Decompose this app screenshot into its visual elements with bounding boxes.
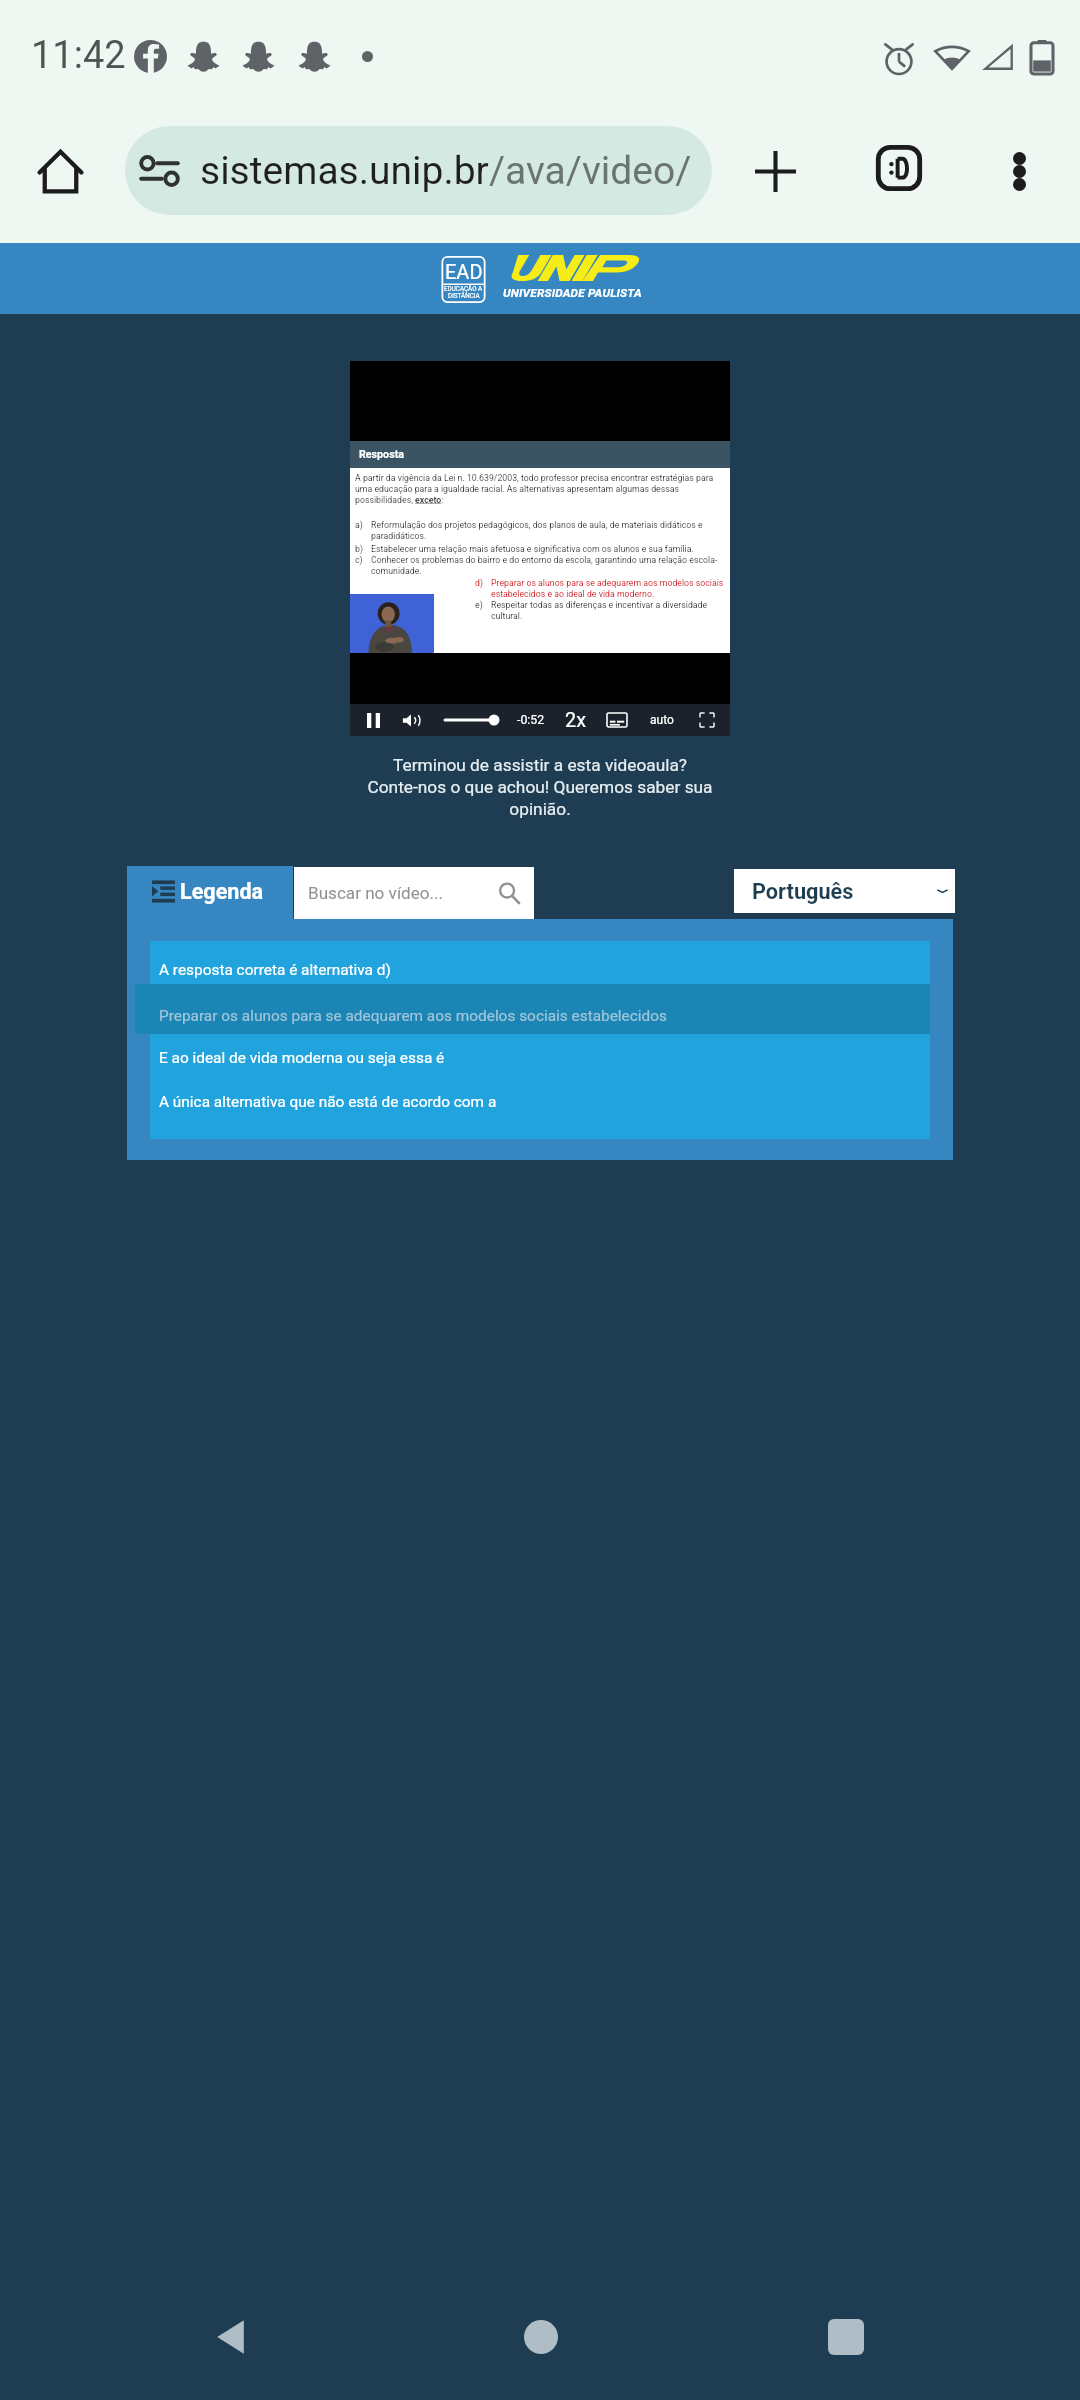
button[interactable]: Captions bbox=[602, 704, 632, 736]
staticText: sistemas.unip.br bbox=[200, 148, 489, 194]
button[interactable]: Legenda bbox=[127, 866, 293, 919]
staticText: c) bbox=[355, 555, 371, 565]
staticText: Preparar os alunos para se adequarem aos… bbox=[159, 1007, 667, 1025]
staticText: Reformulação dos projetos pedagógicos, d… bbox=[371, 520, 703, 541]
button[interactable]: Português bbox=[734, 869, 955, 913]
staticText: DISTÂNCIA bbox=[448, 292, 480, 299]
staticText: Resposta bbox=[359, 448, 404, 461]
button[interactable]: Mute bbox=[397, 704, 425, 736]
button[interactable]: A resposta correta é alternativa d) bbox=[150, 941, 930, 985]
button[interactable] bbox=[135, 984, 930, 1034]
staticText: A resposta correta é alternativa d) bbox=[159, 961, 391, 979]
button[interactable]: E ao ideal de vida moderna ou seja essa … bbox=[150, 1029, 930, 1073]
staticText: A única alternativa que não está de acor… bbox=[159, 1093, 497, 1111]
button[interactable]: Home bbox=[481, 2280, 601, 2400]
staticText: auto bbox=[650, 713, 674, 727]
staticText: /ava/video/ bbox=[489, 148, 692, 194]
button[interactable]: Recents bbox=[786, 2280, 906, 2400]
button[interactable]: Buscar no vídeo... bbox=[294, 867, 534, 919]
staticText: e) bbox=[475, 600, 491, 610]
button[interactable] bbox=[150, 985, 930, 1029]
staticText: EDUCAÇÃO A bbox=[444, 285, 483, 292]
staticText: Estabelecer uma relação mais afetuosa e … bbox=[371, 544, 694, 554]
staticText: Português bbox=[752, 879, 854, 904]
button[interactable]: Fullscreen bbox=[693, 704, 721, 736]
staticText: EAD bbox=[445, 260, 483, 283]
button[interactable]: Tab switcher bbox=[853, 122, 945, 214]
staticText: b) bbox=[355, 544, 371, 554]
button[interactable]: A única alternativa que não está de acor… bbox=[150, 1073, 930, 1117]
button[interactable]: New tab bbox=[729, 125, 821, 217]
staticText: Preparar os alunos para se adequarem aos… bbox=[491, 578, 723, 599]
button[interactable]: Home bbox=[14, 125, 106, 217]
staticText: -0:52 bbox=[517, 713, 545, 727]
staticText: UNIVERSIDADE PAULISTA bbox=[503, 286, 642, 300]
staticText: A partir da vigência da Lei n. 10.639/20… bbox=[355, 473, 714, 505]
button[interactable]: Pause bbox=[359, 704, 387, 736]
button[interactable]: Back bbox=[170, 2280, 290, 2400]
staticText: Respeitar todas as diferenças e incentiv… bbox=[491, 600, 708, 621]
staticText: Conhecer os problemas do bairro e do ent… bbox=[371, 555, 718, 576]
staticText: Legenda bbox=[180, 879, 264, 904]
button[interactable]: sistemas.unip.br bbox=[125, 126, 712, 215]
staticText: E ao ideal de vida moderna ou seja essa … bbox=[159, 1049, 445, 1067]
staticText: Buscar no vídeo... bbox=[308, 883, 444, 903]
staticText: 11:42 bbox=[31, 33, 126, 78]
staticText: Terminou de assistir a esta videoaula? C… bbox=[364, 755, 716, 819]
button[interactable]: More options bbox=[973, 125, 1065, 217]
staticText: 2x bbox=[565, 709, 586, 732]
staticText: d) bbox=[475, 578, 491, 588]
staticText: a) bbox=[355, 520, 371, 530]
